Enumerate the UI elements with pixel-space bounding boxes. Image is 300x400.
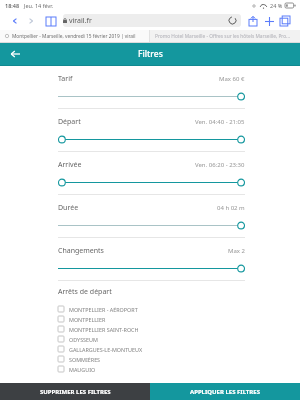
staticText: MAUGUIO (69, 366, 96, 373)
staticText: virail.fr (69, 16, 92, 26)
staticText: 18:48 (5, 2, 20, 9)
staticText: Promo Hotel Marseille - Offres sur les h… (155, 33, 290, 40)
button[interactable]: Durée (58, 195, 245, 237)
button[interactable]: GALLARGUES-LE-MONTUEUX (58, 344, 245, 354)
staticText: Montpellier - Marseille, vendredi 15 fév… (12, 33, 136, 40)
button[interactable]: Montpellier - Marseille, vendredi 15 fév… (0, 30, 149, 42)
staticText: 24 % (270, 2, 283, 9)
button[interactable]: Reload (228, 16, 237, 25)
staticText: SOMMIÈRES (69, 356, 101, 363)
staticText: Changements (58, 246, 104, 256)
staticText: Arrivée (58, 160, 82, 170)
staticText: Durée (58, 203, 79, 213)
button[interactable]: MONTPELLIER SAINT-ROCH (58, 324, 245, 334)
staticText: Arrêts de départ (58, 287, 112, 297)
button[interactable]: Arrivée (58, 152, 245, 194)
button[interactable]: New tab (261, 13, 277, 29)
button[interactable]: MONTPELLIER (58, 314, 245, 324)
button[interactable]: Back (6, 45, 24, 63)
button[interactable]: ODYSSEUM (58, 334, 245, 344)
staticText: Max 60 € (219, 75, 245, 83)
button[interactable]: MAUGUIO (58, 364, 245, 374)
staticText: SUPPRIMER LES FILTRES (40, 388, 111, 396)
staticText: Ven. 06:20 - 23:30 (195, 161, 245, 169)
button[interactable]: Tabs (277, 13, 293, 29)
button[interactable]: Forward (23, 13, 39, 29)
button[interactable]: Bookmarks (43, 13, 59, 29)
button[interactable]: APPLIQUER LES FILTRES (150, 383, 300, 400)
button[interactable]: virail.fr (63, 14, 241, 27)
button[interactable]: Share (245, 13, 261, 29)
staticText: 04 h 02 m (217, 204, 245, 212)
button[interactable]: Départ (58, 109, 245, 151)
staticText: MONTPELLIER SAINT-ROCH (69, 326, 139, 333)
button[interactable]: SUPPRIMER LES FILTRES (0, 383, 150, 400)
button[interactable]: Changements (58, 238, 245, 280)
staticText: MONTPELLIER (69, 316, 106, 323)
staticText: Départ (58, 117, 81, 127)
staticText: GALLARGUES-LE-MONTUEUX (69, 346, 143, 353)
staticText: MONTPELLIER - AÉROPORT (69, 306, 138, 313)
button[interactable]: Back (7, 13, 23, 29)
button[interactable]: Promo Hotel Marseille - Offres sur les h… (150, 30, 300, 42)
staticText: APPLIQUER LES FILTRES (190, 388, 260, 396)
staticText: ODYSSEUM (69, 336, 98, 343)
staticText: Tarif (58, 74, 73, 84)
staticText: Filtres (138, 48, 163, 60)
staticText: Max 2 (228, 247, 245, 255)
button[interactable]: MONTPELLIER - AÉROPORT (58, 304, 245, 314)
button[interactable]: Tarif (58, 66, 245, 108)
staticText: Jeu. 14 févr. (24, 2, 54, 9)
staticText: Ven. 04:40 - 21:05 (195, 118, 245, 126)
button[interactable]: SOMMIÈRES (58, 354, 245, 364)
